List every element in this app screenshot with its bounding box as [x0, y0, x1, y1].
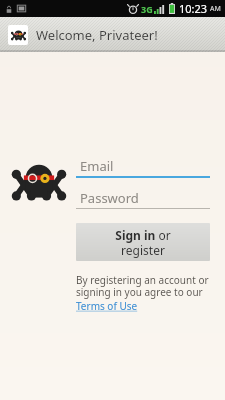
staticText: By registering an account or signing in … — [76, 273, 209, 299]
other: Pirate skull logo — [12, 156, 66, 210]
button[interactable]: Sign in or register — [76, 223, 210, 261]
button[interactable]: Terms of Use — [76, 299, 138, 313]
button[interactable]: App logo — [0, 17, 225, 52]
staticText: Email — [80, 157, 114, 175]
staticText: Sign in or register — [115, 227, 171, 258]
other: App logo — [8, 25, 28, 45]
staticText: Welcome, Privateer! — [36, 26, 158, 44]
staticText: 3G — [141, 3, 153, 15]
staticText: Password — [80, 189, 139, 207]
button[interactable]: Email — [76, 156, 210, 178]
staticText: Terms of Use — [76, 299, 138, 313]
staticText: 10:23 — [179, 1, 208, 16]
button[interactable]: Password — [76, 188, 210, 209]
staticText: AM — [210, 4, 221, 14]
